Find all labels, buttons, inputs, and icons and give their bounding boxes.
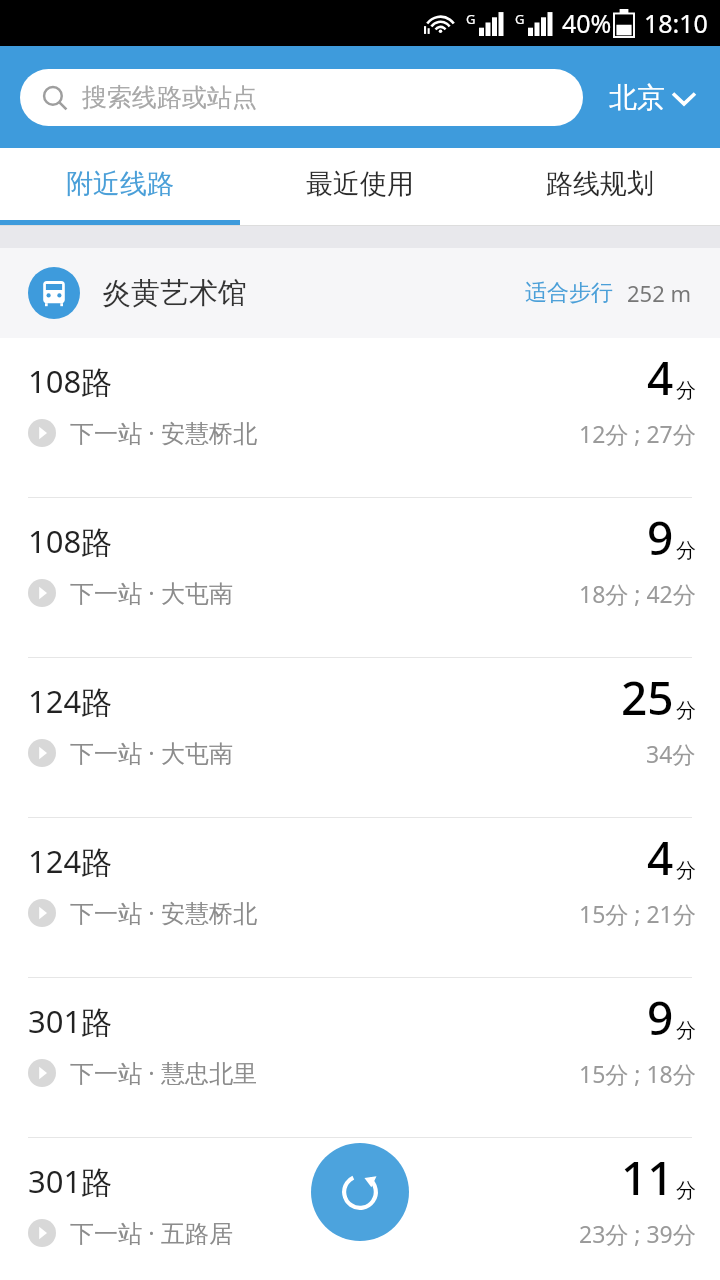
staticText: 34分 <box>646 738 696 769</box>
button[interactable]: 最近使用 <box>240 148 480 220</box>
staticText: 9 <box>647 986 674 1049</box>
staticText: 分 <box>676 378 696 403</box>
staticText: 301路 <box>28 1160 113 1202</box>
staticText: 路线规划 <box>546 167 654 201</box>
staticText: 12分 ; 27分 <box>579 418 696 449</box>
staticText: 4 <box>647 346 674 409</box>
staticText: 最近使用 <box>306 167 414 201</box>
staticText: 124路 <box>28 840 113 882</box>
staticText: 4 <box>647 826 674 889</box>
staticText: 108路 <box>28 360 113 402</box>
staticText: 北京 <box>609 80 665 115</box>
button[interactable]: 炎黄艺术馆 <box>0 248 720 338</box>
staticText: 124路 <box>28 680 113 722</box>
button[interactable]: 108路 <box>0 498 720 657</box>
button[interactable]: 301路 <box>0 1138 720 1280</box>
staticText: 25 <box>621 666 674 729</box>
staticText: 9 <box>647 506 674 569</box>
staticText: 下一站 · 安慧桥北 <box>70 896 257 929</box>
button[interactable]: Refresh <box>311 1143 409 1241</box>
staticText: 23分 ; 39分 <box>579 1218 696 1249</box>
staticText: 下一站 · 大屯南 <box>70 736 233 769</box>
button[interactable]: 301路 <box>0 978 720 1137</box>
button[interactable]: 路线规划 <box>480 148 720 220</box>
button[interactable]: 108路 <box>0 338 720 497</box>
staticText: 15分 ; 21分 <box>579 898 696 929</box>
button[interactable]: 搜索线路或站点 <box>20 69 583 126</box>
staticText: 40% <box>562 6 612 40</box>
staticText: 11 <box>621 1146 674 1209</box>
staticText: 炎黄艺术馆 <box>102 275 247 312</box>
staticText: 搜索线路或站点 <box>82 82 257 113</box>
staticText: 18分 ; 42分 <box>579 578 696 609</box>
staticText: 下一站 · 五路居 <box>70 1216 233 1249</box>
button[interactable]: 124路 <box>0 818 720 977</box>
button[interactable]: 124路 <box>0 658 720 817</box>
staticText: 301路 <box>28 1000 113 1042</box>
staticText: 108路 <box>28 520 113 562</box>
staticText: 下一站 · 大屯南 <box>70 576 233 609</box>
staticText: 分 <box>676 538 696 563</box>
staticText: 252 m <box>627 278 692 308</box>
staticText: 附近线路 <box>66 167 174 201</box>
staticText: 15分 ; 18分 <box>579 1058 696 1089</box>
button[interactable]: 附近线路 <box>0 148 240 220</box>
staticText: 分 <box>676 698 696 723</box>
staticText: 适合步行 <box>525 279 613 307</box>
staticText: 分 <box>676 1178 696 1203</box>
staticText: 下一站 · 慧忠北里 <box>70 1056 257 1089</box>
staticText: 分 <box>676 1018 696 1043</box>
staticText: 18:10 <box>644 6 708 40</box>
staticText: G <box>515 10 525 28</box>
staticText: 下一站 · 安慧桥北 <box>70 416 257 449</box>
staticText: 分 <box>676 858 696 883</box>
staticText: G <box>466 10 476 28</box>
button[interactable]: 北京 <box>605 72 699 123</box>
